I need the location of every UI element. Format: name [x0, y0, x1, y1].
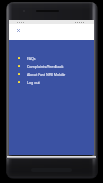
staticText: About Fast NFB Mobile	[27, 72, 66, 77]
button[interactable]: Log out	[9, 78, 94, 86]
button[interactable]: About Fast NFB Mobile	[9, 70, 94, 78]
staticText: Log out	[27, 80, 40, 85]
button[interactable]: Close	[13, 25, 23, 35]
staticText: FAQs	[27, 56, 36, 61]
staticText: Complaints/Feedback	[27, 64, 64, 69]
button[interactable]: FAQs	[9, 54, 94, 62]
button[interactable]: Complaints/Feedback	[9, 62, 94, 70]
